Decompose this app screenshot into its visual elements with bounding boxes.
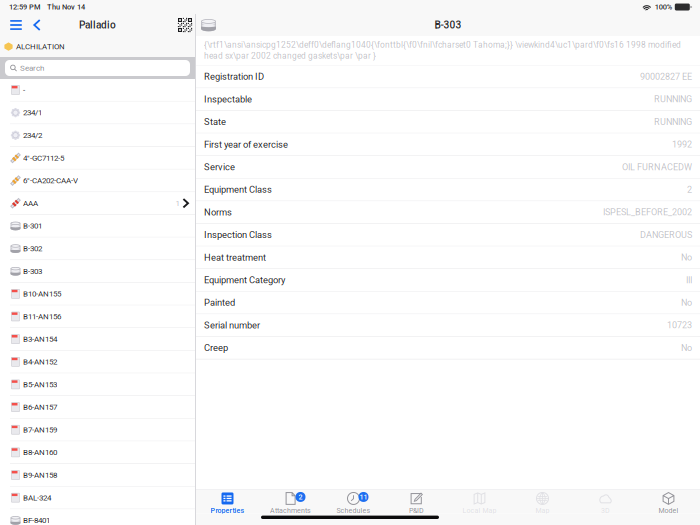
button[interactable]: B3-AN154: [0, 328, 195, 351]
staticText: 2: [298, 493, 302, 501]
staticText: Inspection Class: [204, 229, 272, 240]
staticText: OIL FURNACEDW: [622, 162, 692, 172]
staticText: Equipment Category: [204, 275, 285, 285]
staticText: B8-AN160: [23, 448, 57, 457]
staticText: Properties: [210, 506, 244, 515]
button[interactable]: 234/2: [0, 124, 195, 147]
staticText: ALCHILATION: [16, 42, 65, 51]
staticText: Local Map: [462, 506, 496, 515]
button[interactable]: B8-AN160: [0, 441, 195, 464]
button[interactable]: BAL-324: [0, 487, 195, 509]
staticText: No: [681, 297, 692, 308]
staticText: RUNNING: [654, 94, 692, 104]
button[interactable]: Equipment type: [201, 18, 216, 31]
staticText: 234/1: [23, 108, 42, 117]
staticText: 3D: [601, 506, 610, 515]
staticText: B-302: [23, 244, 42, 253]
staticText: B9-AN158: [23, 470, 57, 480]
staticText: Map: [535, 506, 549, 515]
button[interactable]: Model: [637, 492, 700, 515]
staticText: First year of exercise: [204, 139, 288, 150]
staticText: Painted: [204, 297, 235, 308]
button[interactable]: 3D: [574, 492, 637, 515]
button[interactable]: -: [0, 79, 195, 102]
staticText: B-303: [434, 19, 461, 31]
staticText: B6-AN157: [23, 402, 57, 412]
button[interactable]: B-302: [0, 238, 195, 260]
button[interactable]: B5-AN153: [0, 373, 195, 396]
staticText: 2: [687, 184, 692, 195]
button[interactable]: AAA: [0, 192, 195, 215]
button[interactable]: Properties: [196, 492, 259, 515]
staticText: 1: [175, 198, 179, 208]
staticText: Thu Nov 14: [47, 3, 85, 11]
button[interactable]: 11: [322, 492, 385, 515]
staticText: B5-AN153: [23, 380, 57, 389]
staticText: P&ID: [409, 506, 424, 515]
staticText: B7-AN159: [23, 425, 57, 434]
staticText: 12:59 PM: [9, 3, 41, 11]
staticText: No: [681, 252, 692, 263]
button[interactable]: Scan QR code: [178, 18, 192, 32]
staticText: Creep: [204, 342, 228, 353]
staticText: Search: [20, 63, 44, 73]
staticText: ISPESL_BEFORE_2002: [603, 207, 692, 217]
staticText: RUNNING: [654, 116, 692, 127]
button[interactable]: B-303: [0, 260, 195, 283]
button[interactable]: 234/1: [0, 102, 195, 124]
staticText: 100%: [655, 3, 672, 11]
staticText: -: [23, 85, 25, 95]
button[interactable]: B9-AN158: [0, 464, 195, 487]
button[interactable]: Map: [511, 492, 574, 515]
staticText: B11-AN156: [23, 312, 61, 321]
staticText: Equipment Class: [204, 184, 272, 195]
button[interactable]: Back: [29, 14, 45, 36]
button[interactable]: Local Map: [448, 492, 511, 515]
button[interactable]: 6"-CA202-CAA-V: [0, 170, 195, 192]
staticText: Norms: [204, 207, 232, 218]
staticText: 1992: [672, 139, 692, 150]
staticText: BAL-324: [23, 493, 51, 502]
button[interactable]: B-301: [0, 215, 195, 237]
staticText: No: [681, 342, 692, 353]
staticText: B3-AN154: [23, 334, 57, 344]
staticText: B4-AN152: [23, 357, 57, 366]
staticText: head sx\par 2002 changed gaskets\par \pa…: [204, 51, 376, 61]
button[interactable]: P&ID: [385, 492, 448, 515]
button[interactable]: Menu: [6, 14, 26, 36]
staticText: DANGEROUS: [640, 229, 692, 240]
button[interactable]: 4"-GC7112-5: [0, 147, 195, 169]
staticText: {\rtf1\ansi\ansicpg1252\deff0\deflang104…: [204, 40, 681, 50]
staticText: III: [686, 275, 692, 285]
button[interactable]: BF-8401: [0, 509, 195, 525]
staticText: AAA: [23, 198, 38, 208]
staticText: 11: [359, 493, 367, 501]
staticText: State: [204, 116, 226, 127]
staticText: Registration ID: [204, 71, 264, 82]
staticText: Attachments: [270, 506, 311, 515]
staticText: 6"-CA202-CAA-V: [23, 176, 78, 185]
button[interactable]: B10-AN155: [0, 283, 195, 305]
staticText: Inspectable: [204, 94, 252, 105]
staticText: B10-AN155: [23, 289, 61, 298]
staticText: B-301: [23, 221, 42, 231]
staticText: Heat treatment: [204, 252, 266, 263]
staticText: Serial number: [204, 320, 260, 331]
button[interactable]: B4-AN152: [0, 351, 195, 373]
staticText: BF-8401: [23, 516, 50, 525]
staticText: 4"-GC7112-5: [23, 153, 64, 163]
button[interactable]: 2: [259, 492, 322, 515]
button[interactable]: B11-AN156: [0, 305, 195, 328]
staticText: Schedules: [336, 506, 370, 515]
staticText: 10723: [667, 320, 692, 330]
button[interactable]: B7-AN159: [0, 419, 195, 441]
staticText: Service: [204, 162, 235, 172]
button[interactable]: B6-AN157: [0, 396, 195, 419]
staticText: Palladio: [79, 19, 116, 31]
staticText: 234/2: [23, 131, 42, 140]
staticText: 90002827 EE: [640, 71, 692, 82]
staticText: Model: [658, 506, 678, 515]
staticText: B-303: [23, 266, 42, 276]
